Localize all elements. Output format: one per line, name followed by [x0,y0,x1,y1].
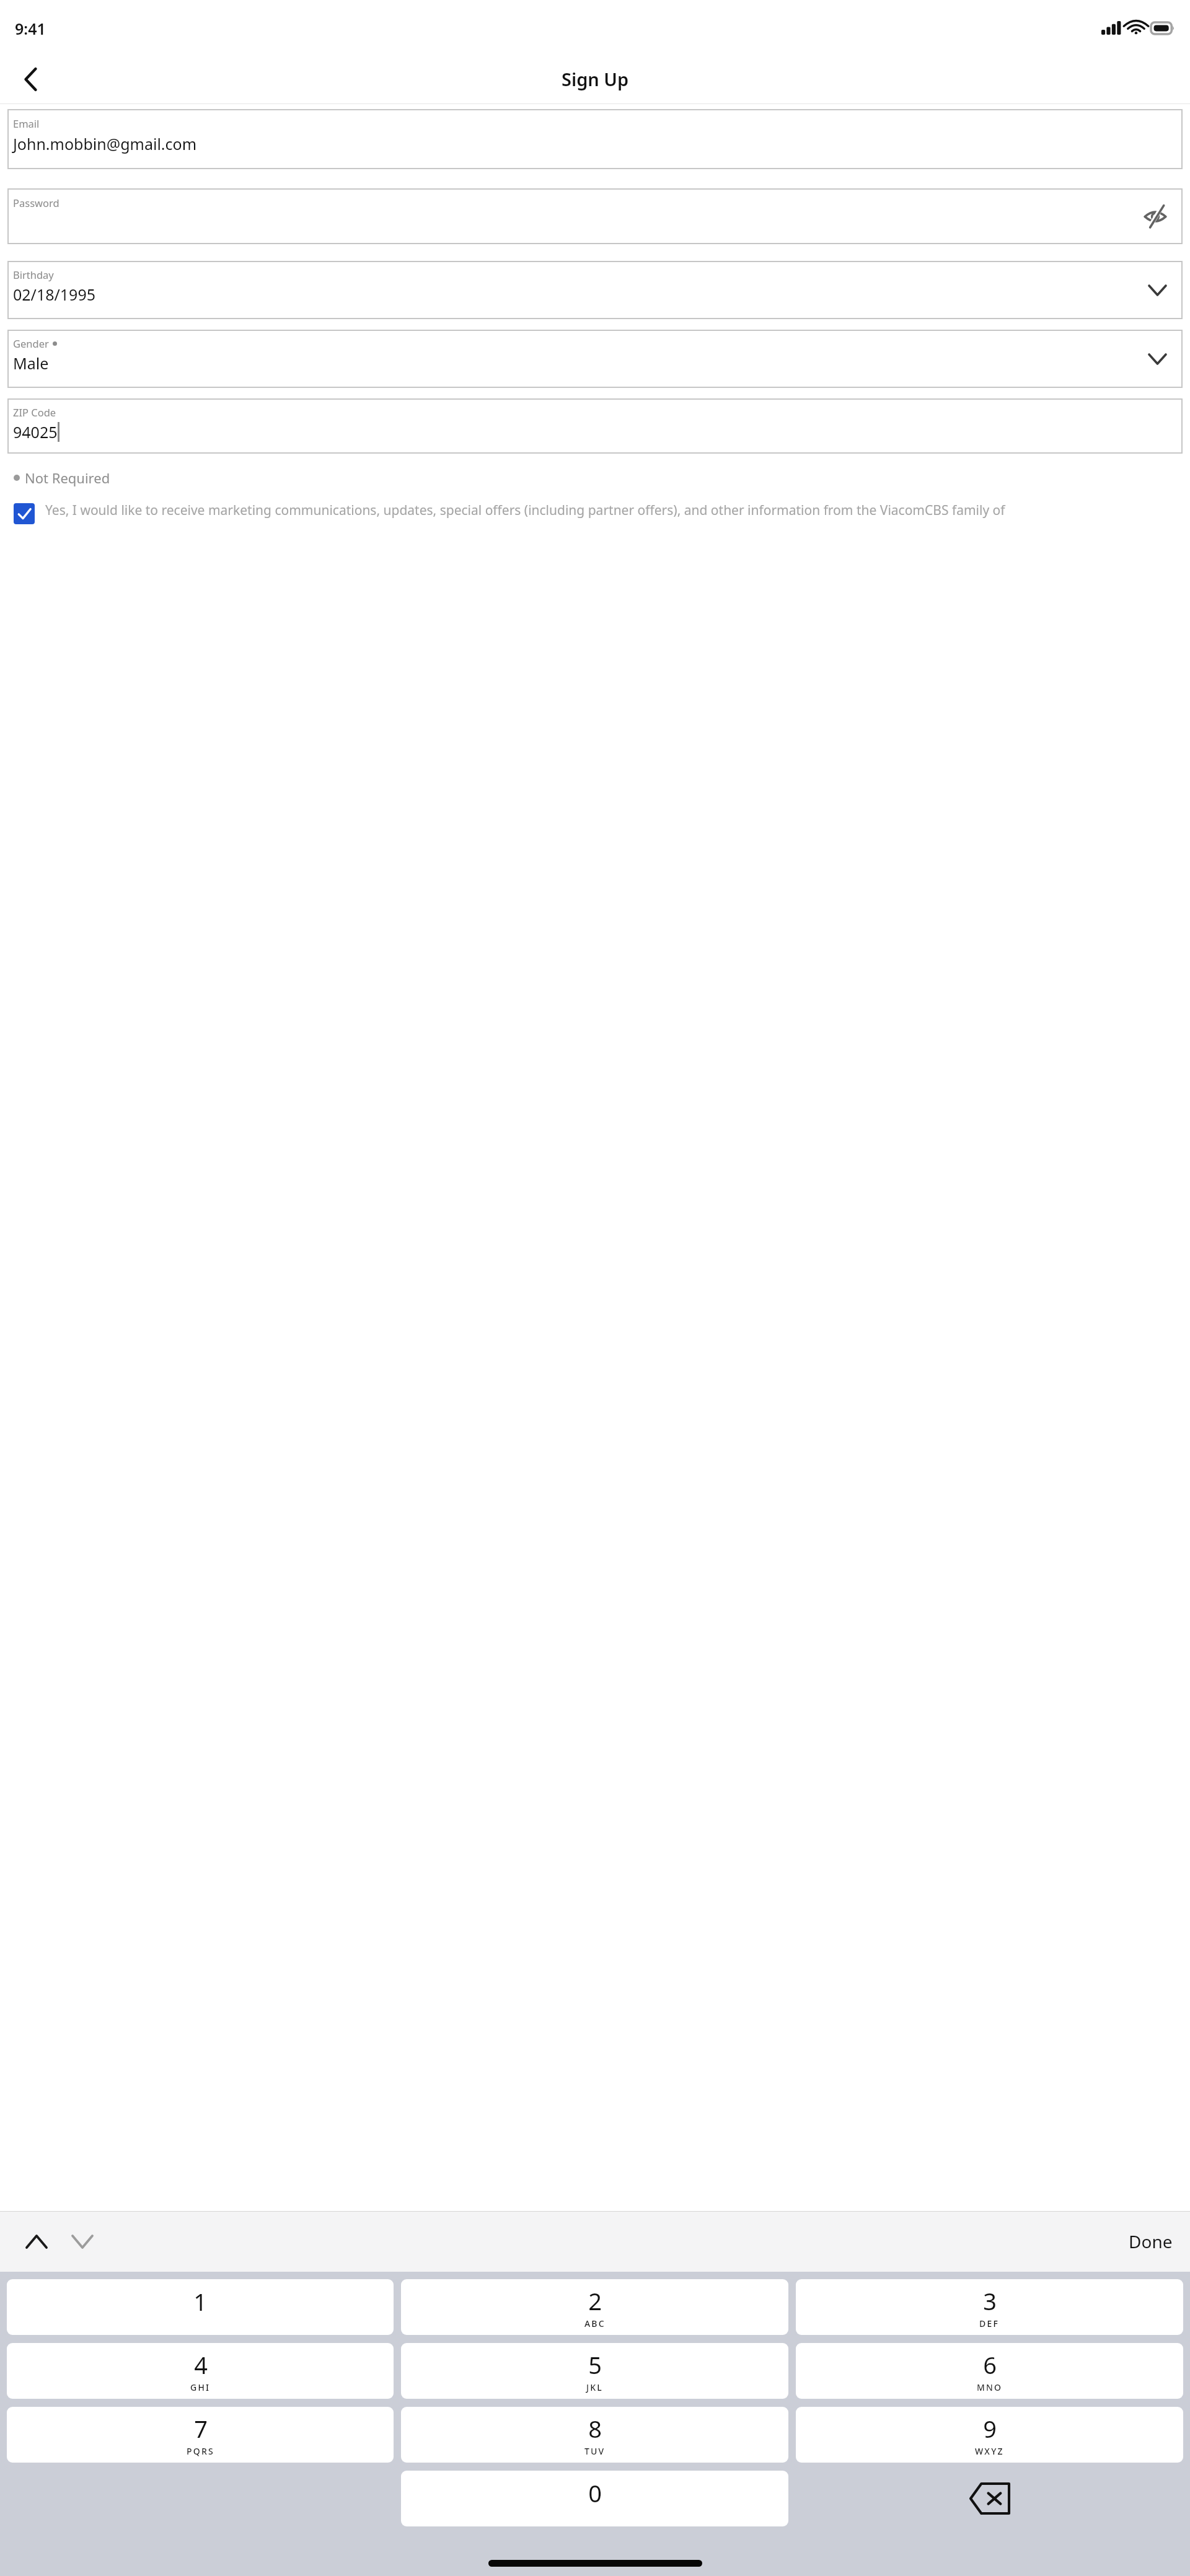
button[interactable]: 3 [796,2279,1183,2335]
staticText: ZIP Code [13,405,56,419]
staticText: Birthday [13,268,54,281]
staticText: 9 [983,2412,997,2445]
button[interactable]: Gender [7,330,1183,388]
button[interactable]: 2 [401,2279,788,2335]
button[interactable]: Done [1121,2225,1180,2258]
button[interactable]: 6 [796,2343,1183,2399]
button[interactable]: ZIP Code [7,398,1183,454]
staticText: 02/18/1995 [13,284,96,305]
button[interactable]: Previous field [17,2222,56,2261]
staticText: Email [13,116,40,130]
button[interactable]: 9 [796,2407,1183,2463]
staticText: 1 [193,2285,207,2318]
staticText: MNO [977,2381,1003,2393]
button[interactable]: 5 [401,2343,788,2399]
staticText: 0 [588,2477,602,2509]
button[interactable]: 4 [7,2343,394,2399]
staticText: Male [13,353,49,374]
button[interactable]: 8 [401,2407,788,2463]
staticText: 94025 [13,421,58,442]
button[interactable]: Birthday [7,261,1183,319]
button[interactable]: Backspace [796,2471,1183,2526]
button[interactable]: Back [11,60,50,99]
button[interactable]: Open picker [1143,276,1171,304]
staticText: DEF [979,2318,1000,2329]
button[interactable]: Next field [63,2222,102,2261]
staticText: PQRS [187,2445,214,2457]
staticText: 9:41 [15,18,46,39]
staticText: Sign Up [562,67,629,91]
button[interactable]: Open picker [1143,345,1171,373]
button[interactable]: 0 [401,2471,788,2526]
staticText: 5 [588,2349,602,2381]
staticText: John.mobbin@gmail.com [13,133,197,154]
button[interactable]: Email [7,109,1183,169]
button[interactable]: 1 [7,2279,394,2335]
staticText: TUV [584,2445,606,2457]
button[interactable]: Show password [1138,199,1173,234]
staticText: WXYZ [975,2445,1004,2457]
button[interactable]: Password [7,188,1183,244]
staticText: Password [13,196,59,209]
staticText: JKL [586,2381,603,2393]
staticText: Gender [13,336,49,350]
staticText: Yes, I would like to receive marketing c… [45,501,1005,519]
staticText: 6 [983,2349,997,2381]
staticText: GHI [190,2381,211,2393]
staticText: 7 [194,2412,208,2445]
staticText: Done [1129,2230,1173,2253]
staticText: ABC [584,2318,606,2329]
staticText: 8 [588,2412,602,2445]
button[interactable]: 7 [7,2407,394,2463]
staticText: Not Required [25,468,110,487]
staticText: 4 [194,2349,208,2381]
button[interactable]: Yes, I would like to receive marketing c… [7,501,1183,522]
staticText: 3 [983,2285,997,2317]
staticText: 2 [588,2285,602,2317]
